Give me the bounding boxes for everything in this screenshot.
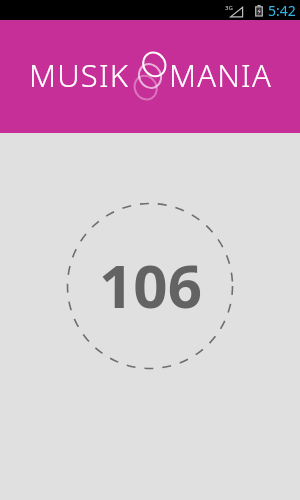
button[interactable]: Musik Mania [0,20,300,133]
button[interactable]: Count 106 [66,202,234,370]
staticText: MUSIK [29,54,130,96]
staticText: 5:42 [268,1,296,20]
staticText: 106 [99,244,202,326]
staticText: 3G [225,4,233,12]
staticText: MANIA [169,54,272,96]
